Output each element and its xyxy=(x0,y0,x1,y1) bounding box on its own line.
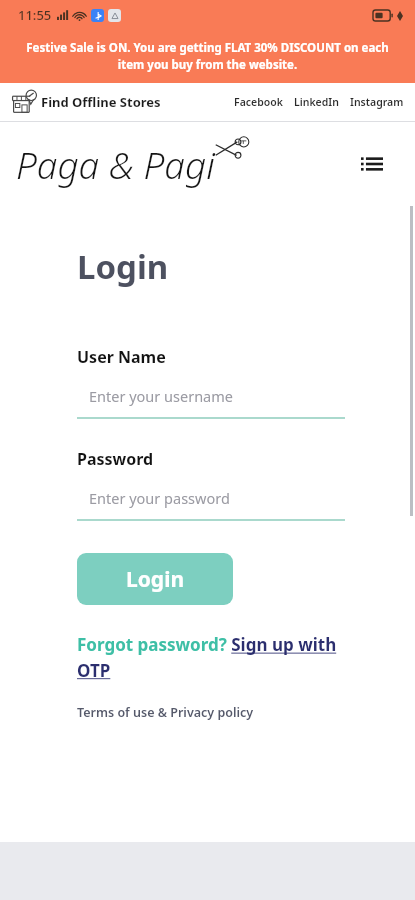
button[interactable]: Enter your username xyxy=(77,386,345,419)
staticText: Terms of use & Privacy policy xyxy=(77,704,254,721)
button[interactable]: Terms of use & Privacy policy xyxy=(77,704,254,721)
staticText: Enter your username xyxy=(89,386,233,406)
button[interactable]: Open menu xyxy=(353,148,391,180)
staticText: LinkedIn xyxy=(294,95,339,109)
staticText: Forgot password? Sign up with OTP xyxy=(77,633,345,682)
staticText: Facebook xyxy=(234,95,283,109)
staticText: Find Offline Stores xyxy=(41,93,161,111)
staticText: 11:55 xyxy=(18,6,52,24)
staticText: Instagram xyxy=(350,95,404,109)
staticText: User Name xyxy=(77,346,166,368)
staticText: Festive Sale is ON. You are getting FLAT… xyxy=(22,40,393,73)
button[interactable]: Facebook xyxy=(233,91,284,113)
button[interactable]: LinkedIn xyxy=(293,91,340,113)
button[interactable]: Login xyxy=(77,553,233,605)
staticText: Enter your password xyxy=(89,488,230,508)
staticText: Login xyxy=(126,565,185,594)
button[interactable]: Paga & Pagi home xyxy=(16,139,251,189)
staticText: Password xyxy=(77,448,154,470)
staticText: Login xyxy=(77,244,169,289)
button[interactable]: Forgot password? Sign up with OTP xyxy=(77,633,345,682)
button[interactable]: Find Offline Stores xyxy=(11,87,161,117)
staticText: Paga & Pagi xyxy=(16,139,215,189)
button[interactable]: Instagram xyxy=(349,91,405,113)
button[interactable]: Enter your password xyxy=(77,488,345,521)
